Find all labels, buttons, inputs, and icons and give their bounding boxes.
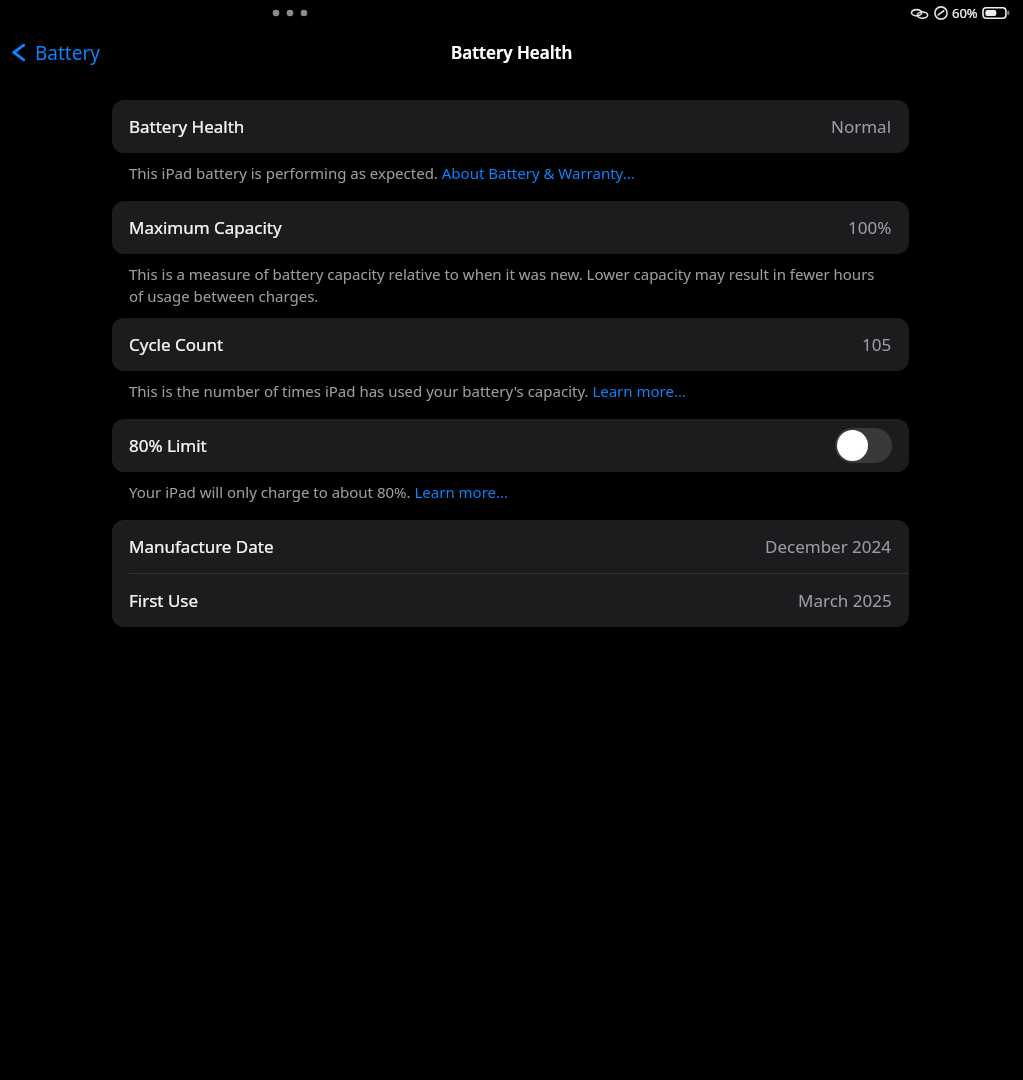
- staticText: 80% Limit: [129, 434, 207, 457]
- button[interactable]: Maximum Capacity: [112, 201, 909, 254]
- staticText: This is a measure of battery capacity re…: [129, 264, 885, 307]
- button[interactable]: Manufacture Date: [112, 520, 909, 573]
- staticText: This iPad battery is performing as expec…: [129, 163, 885, 183]
- staticText: Manufacture Date: [129, 535, 274, 558]
- staticText: Maximum Capacity: [129, 216, 282, 239]
- button[interactable]: Cycle Count: [112, 318, 909, 371]
- staticText: March 2025: [798, 589, 892, 612]
- button[interactable]: 80% Limit: [112, 419, 909, 472]
- staticText: 105: [862, 333, 892, 356]
- staticText: December 2024: [765, 535, 892, 558]
- staticText: 100%: [848, 216, 892, 239]
- staticText: Battery: [35, 40, 100, 66]
- staticText: This is the number of times iPad has use…: [129, 381, 885, 401]
- button[interactable]: 80% Limit toggle, off: [835, 428, 892, 463]
- staticText: Your iPad will only charge to about 80%.…: [129, 482, 885, 502]
- staticText: Battery Health: [129, 115, 245, 138]
- button[interactable]: Battery: [0, 34, 110, 71]
- staticText: First Use: [129, 589, 199, 612]
- staticText: Normal: [831, 115, 892, 138]
- button[interactable]: Battery Health: [112, 100, 909, 153]
- button[interactable]: First Use: [112, 574, 909, 627]
- staticText: Battery Health: [451, 41, 573, 64]
- staticText: Cycle Count: [129, 333, 224, 356]
- staticText: 60%: [952, 4, 978, 22]
